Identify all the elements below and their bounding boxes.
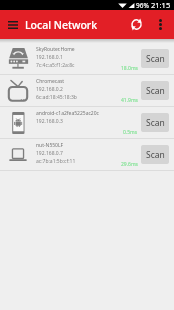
- button[interactable]: nut-N550LF: [0, 139, 174, 170]
- button[interactable]: More options: [149, 10, 171, 39]
- staticText: 0.5ms: [123, 129, 138, 136]
- staticText: 29.6ms: [121, 161, 138, 168]
- button[interactable]: SkyRouter.Home: [0, 43, 174, 74]
- staticText: Scan: [146, 117, 165, 129]
- button[interactable]: android-c1a2fea5225ac20c: [0, 107, 174, 138]
- staticText: nut-N550LF: [36, 142, 64, 149]
- staticText: 192.168.0.3: [36, 118, 63, 125]
- staticText: Scan: [146, 53, 165, 65]
- staticText: Scan: [146, 85, 165, 97]
- staticText: 7c:4c:a5:f1:2a:8c: [36, 62, 75, 69]
- button[interactable]: Chromecast: [0, 75, 174, 106]
- staticText: 192.168.0.7: [36, 150, 63, 157]
- staticText: 192.168.0.1: [36, 54, 63, 61]
- staticText: 18.0ms: [121, 65, 138, 72]
- staticText: 21:15: [151, 0, 171, 10]
- staticText: SkyRouter.Home: [36, 46, 75, 53]
- staticText: Local Network: [25, 18, 98, 32]
- button[interactable]: Scan: [141, 113, 169, 132]
- staticText: 192.168.0.2: [36, 86, 63, 93]
- staticText: 41.9ms: [121, 97, 138, 104]
- staticText: android-c1a2fea5225ac20c: [36, 110, 99, 117]
- staticText: ac:7b:a1:5b:cf:11: [36, 158, 76, 165]
- staticText: Chromecast: [36, 78, 65, 85]
- button[interactable]: Scan: [141, 145, 169, 164]
- staticText: Scan: [146, 149, 165, 161]
- button[interactable]: Refresh: [124, 10, 149, 39]
- staticText: 6c:ad:18:45:18:3b: [36, 94, 77, 101]
- staticText: 96%: [136, 1, 149, 10]
- button[interactable]: Navigation menu: [0, 10, 25, 39]
- button[interactable]: Scan: [141, 49, 169, 68]
- button[interactable]: Scan: [141, 81, 169, 100]
